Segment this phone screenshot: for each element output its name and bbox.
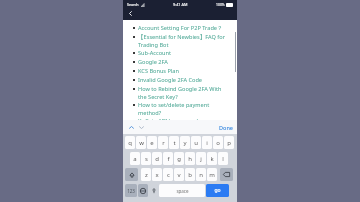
- staticText: j: [200, 155, 202, 163]
- button[interactable]: Account Setting For P2P Trade？: [133, 24, 227, 32]
- button[interactable]: t: [169, 136, 179, 149]
- staticText: Sub-Account: [138, 49, 172, 57]
- staticText: y: [183, 139, 187, 147]
- staticText: l: [222, 155, 224, 163]
- button[interactable]: b: [185, 168, 195, 181]
- button[interactable]: d: [152, 152, 162, 165]
- staticText: m: [209, 171, 215, 179]
- button[interactable]: How to set/delete payment method?: [133, 101, 227, 116]
- button[interactable]: q: [125, 136, 135, 149]
- button[interactable]: y: [180, 136, 190, 149]
- button[interactable]: Invalid Google 2FA Code: [133, 76, 227, 84]
- staticText: r: [162, 139, 165, 147]
- button[interactable]: Next field: [137, 123, 145, 131]
- button[interactable]: Done: [219, 124, 233, 131]
- button[interactable]: r: [158, 136, 168, 149]
- staticText: Account Setting For P2P Trade？: [138, 24, 223, 32]
- staticText: Google 2FA: [138, 58, 168, 66]
- button[interactable]: [125, 168, 138, 181]
- button[interactable]: c: [163, 168, 173, 181]
- button[interactable]: v: [174, 168, 184, 181]
- button[interactable]: Sub-Account: [133, 49, 227, 57]
- staticText: KCS Bonus Plan: [138, 67, 179, 75]
- button[interactable]: j: [196, 152, 206, 165]
- button[interactable]: [149, 184, 158, 197]
- button[interactable]: s: [141, 152, 151, 165]
- button[interactable]: e: [147, 136, 157, 149]
- button[interactable]: KCS Bonus Plan: [133, 67, 227, 75]
- button[interactable]: o: [213, 136, 223, 149]
- staticText: f: [167, 155, 170, 163]
- staticText: How to Rebind Google 2FA With the Secret…: [138, 85, 227, 100]
- staticText: z: [145, 171, 148, 179]
- staticText: u: [194, 139, 198, 147]
- staticText: How to set/delete payment method?: [138, 101, 227, 116]
- button[interactable]: l: [218, 152, 228, 165]
- button[interactable]: go: [206, 184, 229, 197]
- staticText: v: [177, 171, 181, 179]
- staticText: 100%: [216, 2, 225, 7]
- button[interactable]: w: [136, 136, 146, 149]
- staticText: Search: [127, 2, 139, 7]
- button[interactable]: n: [196, 168, 206, 181]
- button[interactable]: f: [163, 152, 173, 165]
- staticText: a: [133, 155, 137, 163]
- button[interactable]: [138, 184, 148, 197]
- staticText: 9:41 AM: [173, 2, 188, 7]
- staticText: go: [214, 187, 221, 194]
- button[interactable]: x: [152, 168, 162, 181]
- staticText: h: [188, 155, 192, 163]
- button[interactable]: 123: [125, 184, 137, 197]
- staticText: 123: [127, 188, 135, 194]
- staticText: space: [176, 188, 189, 194]
- button[interactable]: [220, 168, 233, 181]
- staticText: 【Essential for Newbies】FAQ for Trading B…: [138, 33, 227, 48]
- staticText: x: [155, 171, 159, 179]
- staticText: i: [206, 139, 208, 147]
- button[interactable]: Google 2FA: [133, 58, 227, 66]
- staticText: Invalid Google 2FA Code: [138, 76, 202, 84]
- staticText: p: [227, 139, 231, 147]
- button[interactable]: g: [174, 152, 184, 165]
- button[interactable]: k: [207, 152, 217, 165]
- button[interactable]: a: [130, 152, 140, 165]
- staticText: g: [177, 155, 181, 163]
- staticText: w: [139, 139, 144, 147]
- button[interactable]: KuCoin API key upgrade operation guide: [133, 117, 227, 120]
- staticText: o: [216, 139, 220, 147]
- staticText: d: [155, 155, 159, 163]
- staticText: s: [145, 155, 148, 163]
- staticText: c: [167, 171, 170, 179]
- button[interactable]: h: [185, 152, 195, 165]
- staticText: b: [188, 171, 192, 179]
- staticText: Done: [219, 124, 233, 131]
- button[interactable]: space: [159, 184, 205, 197]
- staticText: q: [128, 139, 132, 147]
- button[interactable]: u: [191, 136, 201, 149]
- button[interactable]: p: [224, 136, 234, 149]
- button[interactable]: z: [141, 168, 151, 181]
- staticText: n: [199, 171, 203, 179]
- button[interactable]: Previous field: [127, 123, 135, 131]
- staticText: e: [150, 139, 154, 147]
- staticText: t: [173, 139, 176, 147]
- button[interactable]: m: [207, 168, 217, 181]
- button[interactable]: i: [202, 136, 212, 149]
- staticText: k: [210, 155, 214, 163]
- button[interactable]: 【Essential for Newbies】FAQ for Trading B…: [133, 33, 227, 48]
- button[interactable]: How to Rebind Google 2FA With the Secret…: [133, 85, 227, 100]
- button[interactable]: Back: [126, 9, 135, 18]
- staticText: KuCoin API key upgrade operation guide: [138, 117, 227, 120]
